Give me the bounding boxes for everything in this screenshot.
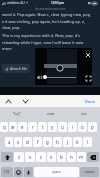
button[interactable]: Shift <box>1 152 13 162</box>
staticText: ⚑ <box>26 2 29 5</box>
staticText: t <box>42 124 44 130</box>
button[interactable]: l <box>83 137 92 147</box>
staticText: r <box>32 124 34 130</box>
staticText: 123 <box>4 170 10 174</box>
staticText: h <box>56 139 59 145</box>
staticText: q <box>3 124 6 130</box>
button[interactable]: u <box>58 122 67 132</box>
button[interactable]: t <box>38 122 47 132</box>
button[interactable]: “hej” <box>0 107 34 120</box>
button[interactable]: j <box>63 137 72 147</box>
staticText: j <box>67 139 69 145</box>
button[interactable]: a <box>5 137 13 147</box>
button[interactable]: Next field <box>21 97 29 105</box>
staticText: n <box>70 154 73 160</box>
staticText: v <box>50 154 53 160</box>
button[interactable]: Emoji <box>14 167 23 177</box>
button[interactable]: now <box>34 107 67 120</box>
staticText: i <box>72 124 74 130</box>
button[interactable]: Done <box>84 97 96 106</box>
staticText: z <box>18 154 21 160</box>
button[interactable]: Backspace <box>87 152 99 162</box>
staticText: f <box>37 139 39 145</box>
button[interactable]: n <box>67 152 76 162</box>
button[interactable]: Full screen <box>86 76 91 81</box>
button[interactable]: not <box>67 107 100 120</box>
staticText: w <box>11 124 15 130</box>
staticText: ewed it. Pop again. Now s, clear typing … <box>2 12 94 30</box>
staticText: Attach file <box>10 66 27 71</box>
staticText: p <box>91 124 94 130</box>
button[interactable]: Close <box>86 53 90 57</box>
staticText: return <box>85 170 95 174</box>
staticText: s <box>17 139 20 145</box>
staticText: ▮▮ <box>88 2 91 5</box>
button[interactable]: Mute <box>37 75 42 80</box>
staticText: g <box>46 139 49 145</box>
button[interactable]: Numbers <box>1 167 13 177</box>
button[interactable]: k <box>73 137 82 147</box>
button[interactable]: p <box>88 122 97 132</box>
staticText: This is my experience with it. Now, pop,… <box>2 33 94 51</box>
button[interactable]: h <box>53 137 62 147</box>
button[interactable]: q <box>0 122 8 132</box>
staticText: Done <box>85 99 95 104</box>
button[interactable]: y <box>48 122 57 132</box>
staticText: d <box>26 139 29 145</box>
button[interactable]: d <box>23 137 32 147</box>
staticText: 12:53 pm <box>51 1 65 5</box>
staticText: space <box>52 170 61 174</box>
staticText: b <box>60 154 63 160</box>
staticText: y <box>51 124 54 130</box>
button[interactable]: space <box>34 167 79 177</box>
button[interactable]: v <box>47 152 56 162</box>
staticText: c <box>40 154 43 160</box>
button[interactable]: w <box>9 122 17 132</box>
staticText: l <box>87 139 89 145</box>
button[interactable]: c <box>36 152 46 162</box>
staticText: o <box>81 124 84 130</box>
button[interactable]: s <box>14 137 22 147</box>
button[interactable]: Play <box>56 64 64 72</box>
button[interactable]: f <box>33 137 42 147</box>
staticText: forums.macrumors.com <box>35 7 66 11</box>
button[interactable]: i <box>68 122 77 132</box>
staticText: m <box>79 154 84 160</box>
staticText: not <box>81 111 87 116</box>
staticText: k <box>76 139 79 145</box>
button[interactable]: x <box>25 152 35 162</box>
button[interactable]: r <box>28 122 37 132</box>
staticText: u <box>61 124 64 130</box>
button[interactable]: o <box>78 122 87 132</box>
staticText: e <box>21 124 24 130</box>
staticText: x <box>29 154 32 160</box>
button[interactable]: g <box>43 137 52 147</box>
staticText: now <box>47 111 54 116</box>
staticText: a <box>8 139 11 145</box>
button[interactable]: e <box>18 122 27 132</box>
button[interactable]: b <box>57 152 66 162</box>
button[interactable]: m <box>77 152 86 162</box>
staticText: “hej” <box>13 111 21 116</box>
button[interactable]: z <box>14 152 24 162</box>
button[interactable]: Previous field <box>4 97 12 105</box>
button[interactable]: Dictation <box>24 167 33 177</box>
staticText: vodafone AU <box>7 1 25 5</box>
button[interactable]: Attach file <box>2 64 30 73</box>
button[interactable]: return <box>80 167 99 177</box>
